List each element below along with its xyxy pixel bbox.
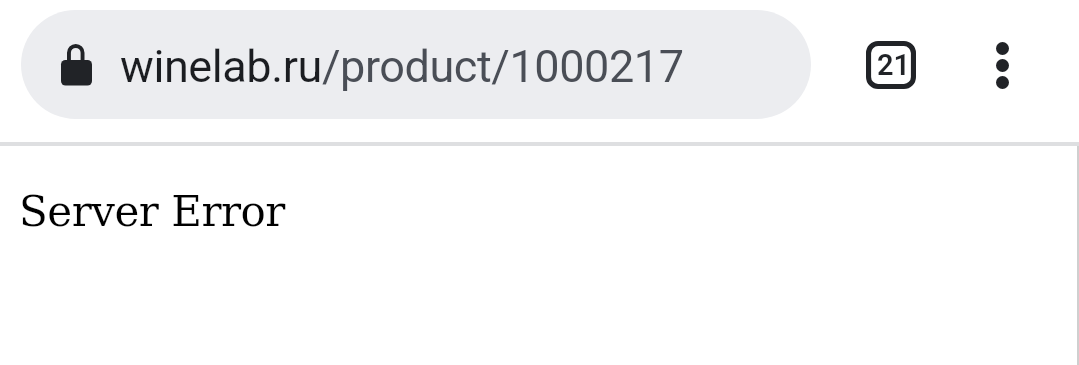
staticText: winelab.ru/product/1000217 <box>120 40 684 93</box>
button[interactable]: winelab.ru/product/1000217 <box>21 10 811 119</box>
staticText: Server Error <box>19 187 285 236</box>
button[interactable]: Switch tabs, 21 open tabs <box>843 17 939 113</box>
staticText: 21 <box>877 48 911 82</box>
button[interactable]: Customize and control Google Chrome <box>954 17 1050 113</box>
